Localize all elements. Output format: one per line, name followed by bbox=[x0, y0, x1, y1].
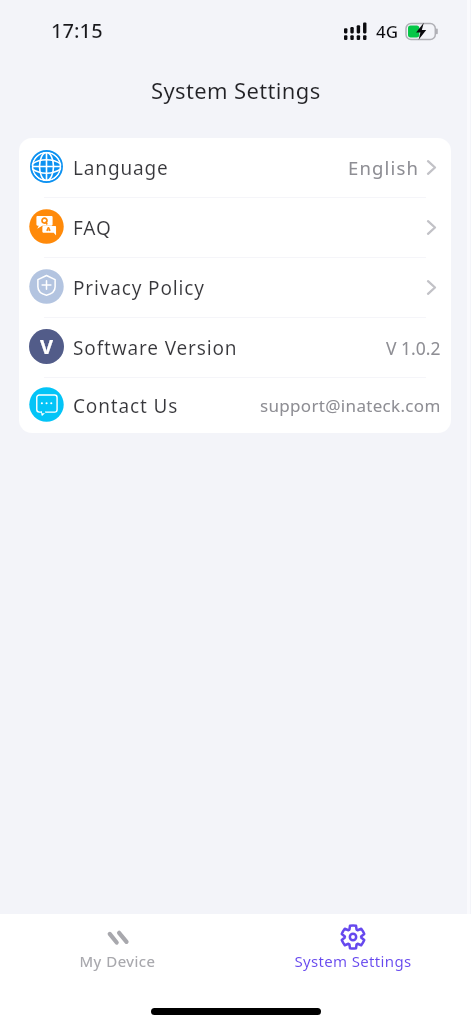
button[interactable]: Contact Us bbox=[19, 378, 451, 433]
staticText: System Settings bbox=[151, 75, 321, 105]
button[interactable]: My Device bbox=[0, 914, 235, 971]
button[interactable]: Privacy Policy bbox=[19, 258, 451, 317]
staticText: My Device bbox=[79, 951, 156, 971]
staticText: System Settings bbox=[294, 951, 412, 971]
staticText: V 1.0.2 bbox=[386, 336, 441, 360]
button[interactable]: FAQ bbox=[19, 198, 451, 257]
staticText: V bbox=[40, 333, 53, 360]
staticText: English bbox=[348, 155, 420, 180]
other: Battery charging bbox=[405, 23, 439, 41]
staticText: support@inateck.com bbox=[260, 394, 441, 417]
staticText: Software Version bbox=[73, 335, 238, 361]
staticText: FAQ bbox=[73, 215, 112, 241]
button[interactable]: V bbox=[19, 318, 451, 377]
button[interactable]: Language bbox=[19, 138, 451, 197]
staticText: Privacy Policy bbox=[73, 275, 205, 301]
staticText: 4G bbox=[376, 20, 399, 43]
staticText: 17:15 bbox=[51, 17, 103, 44]
button[interactable]: System Settings bbox=[235, 914, 471, 971]
staticText: Contact Us bbox=[73, 393, 179, 419]
staticText: Language bbox=[73, 155, 169, 181]
other: Signal strength bbox=[344, 22, 370, 40]
